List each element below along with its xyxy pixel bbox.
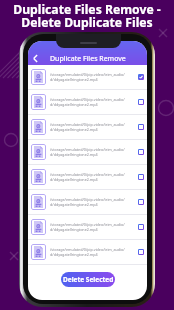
staticText: /storage/emulated/0/pip.video/trim_audio… xyxy=(50,122,136,132)
staticText: /storage/emulated/0/pip.video/trim_audio… xyxy=(50,247,136,257)
staticText: /storage/emulated/0/pip.video/trim_audio… xyxy=(50,147,136,157)
button[interactable]: Select file xyxy=(138,99,144,105)
staticText: /storage/emulated/0/pip.video/trim_audio… xyxy=(50,97,136,107)
button[interactable]: Select file xyxy=(138,224,144,230)
button[interactable]: Select file xyxy=(138,124,144,130)
staticText: /storage/emulated/0/pip.video/trim_audio… xyxy=(50,222,136,232)
staticText: Delete Selected xyxy=(63,275,114,284)
staticText: /storage/emulated/0/pip.video/trim_audio… xyxy=(50,172,136,182)
button[interactable]: Back xyxy=(28,50,43,66)
button[interactable]: /storage/emulated/0/pip.video/trim_audio… xyxy=(28,65,147,89)
button[interactable]: Delete Selected xyxy=(61,272,115,287)
button[interactable]: Select file xyxy=(138,74,144,80)
button[interactable]: Select file xyxy=(138,199,144,205)
staticText: Duplicate Files Remove - Delete Duplicat… xyxy=(0,1,174,31)
staticText: /storage/emulated/0/pip.video/trim_audio… xyxy=(50,72,136,82)
button[interactable]: Select file xyxy=(138,149,144,155)
staticText: Duplicate Files Remove xyxy=(50,54,126,64)
button[interactable]: /storage/emulated/0/pip.video/trim_audio… xyxy=(28,190,147,214)
button[interactable]: Select file xyxy=(138,249,144,255)
button[interactable]: /storage/emulated/0/pip.video/trim_audio… xyxy=(28,115,147,139)
button[interactable]: /storage/emulated/0/pip.video/trim_audio… xyxy=(28,215,147,239)
staticText: /storage/emulated/0/pip.video/trim_audio… xyxy=(50,197,136,207)
button[interactable]: /storage/emulated/0/pip.video/trim_audio… xyxy=(28,240,147,264)
button[interactable]: /storage/emulated/0/pip.video/trim_audio… xyxy=(28,165,147,189)
button[interactable]: /storage/emulated/0/pip.video/trim_audio… xyxy=(28,140,147,164)
button[interactable]: Select file xyxy=(138,174,144,180)
button[interactable]: /storage/emulated/0/pip.video/trim_audio… xyxy=(28,90,147,114)
